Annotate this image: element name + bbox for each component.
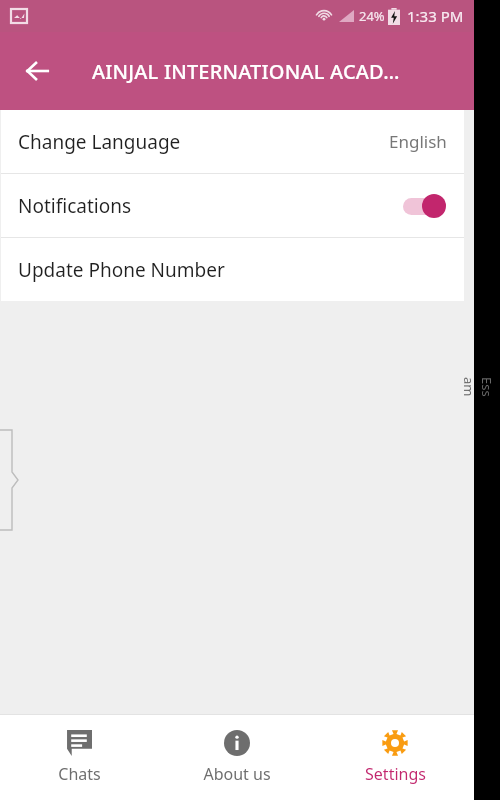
staticText: Change Language bbox=[18, 129, 181, 155]
staticText: About us bbox=[203, 763, 271, 785]
staticText: Notifications bbox=[18, 193, 132, 219]
staticText: Update Phone Number bbox=[18, 257, 225, 283]
staticText: 24% bbox=[359, 7, 385, 25]
button[interactable]: Notifications bbox=[1, 174, 464, 237]
button[interactable]: About us bbox=[158, 715, 316, 800]
staticText: Settings bbox=[365, 763, 426, 785]
button[interactable]: Back bbox=[14, 48, 60, 94]
button[interactable]: Notifications toggle bbox=[401, 192, 447, 220]
staticText: English bbox=[389, 130, 447, 153]
staticText: AINJAL INTERNATIONAL ACAD… bbox=[92, 58, 400, 85]
button[interactable]: Settings bbox=[316, 715, 474, 800]
staticText: Chats bbox=[58, 763, 101, 785]
staticText: 1:33 PM bbox=[407, 6, 464, 26]
button[interactable]: Change Language bbox=[1, 110, 464, 173]
button[interactable]: Update Phone Number bbox=[1, 238, 464, 301]
button[interactable]: Chats bbox=[0, 715, 158, 800]
staticText: Abo Essam bbox=[460, 377, 500, 403]
